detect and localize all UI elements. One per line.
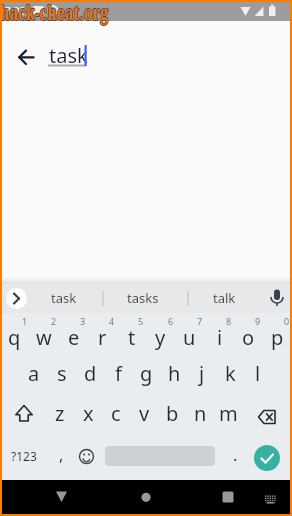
staticText: n — [194, 400, 207, 427]
staticText: z — [55, 400, 65, 427]
button[interactable]: . — [222, 435, 248, 475]
staticText: hack-cheat.org — [1, 0, 109, 26]
staticText: 1 — [22, 315, 28, 327]
staticText: 5 — [138, 315, 144, 327]
staticText: m — [219, 400, 238, 427]
button[interactable] — [6, 288, 27, 309]
button[interactable]: m — [214, 393, 242, 433]
button[interactable]: t — [117, 317, 146, 358]
staticText: u — [183, 324, 196, 351]
button[interactable]: j — [188, 353, 216, 393]
staticText: 4 — [109, 315, 115, 327]
button[interactable]: i — [205, 317, 234, 358]
button[interactable]: g — [132, 353, 160, 393]
button[interactable] — [251, 401, 283, 433]
staticText: task — [49, 42, 88, 69]
staticText: a — [28, 360, 40, 387]
staticText: q — [8, 324, 21, 351]
staticText: 6 — [168, 315, 174, 327]
staticText: hack-cheat.org — [0, 0, 108, 26]
button[interactable]: h — [160, 353, 188, 393]
staticText: p — [271, 324, 284, 351]
staticText: v — [139, 400, 150, 427]
staticText: hack-cheat.org — [0, 0, 109, 26]
button[interactable]: k — [216, 353, 244, 393]
button[interactable] — [10, 43, 38, 71]
staticText: hack-cheat.org — [0, 1, 109, 27]
button[interactable] — [125, 480, 165, 514]
staticText: e — [68, 324, 80, 351]
staticText: 0 — [284, 315, 290, 327]
staticText: task — [51, 289, 77, 307]
staticText: f — [115, 360, 122, 387]
button[interactable]: ?123 — [2, 436, 46, 476]
staticText: hack-cheat.org — [0, 0, 109, 25]
button[interactable]: x — [74, 393, 102, 433]
button[interactable] — [208, 480, 248, 514]
button[interactable] — [42, 480, 82, 514]
button[interactable]: l — [244, 353, 272, 393]
button[interactable]: q — [0, 317, 29, 358]
staticText: s — [57, 360, 67, 387]
staticText: h — [168, 360, 181, 387]
staticText: l — [255, 360, 261, 387]
staticText: j — [199, 360, 205, 387]
staticText: x — [83, 400, 94, 427]
staticText: k — [225, 360, 236, 387]
button[interactable]: w — [29, 317, 58, 358]
button[interactable]: a — [20, 353, 48, 393]
button[interactable]: talk — [193, 283, 255, 312]
staticText: . — [233, 444, 238, 466]
staticText: t — [128, 324, 136, 351]
staticText: 8 — [226, 315, 232, 327]
button[interactable]: tasks — [108, 283, 178, 312]
button[interactable] — [254, 445, 280, 471]
button[interactable]: y — [146, 317, 175, 358]
staticText: y — [155, 324, 166, 351]
button[interactable]: f — [104, 353, 132, 393]
button[interactable]: n — [186, 393, 214, 433]
staticText: w — [36, 324, 52, 351]
staticText: 2 — [51, 315, 57, 327]
staticText: o — [242, 324, 255, 351]
staticText: talk — [213, 289, 236, 307]
button[interactable]: c — [102, 393, 130, 433]
staticText: g — [140, 360, 153, 387]
staticText: i — [217, 324, 223, 351]
staticText: ?123 — [11, 448, 37, 464]
staticText: c — [111, 400, 121, 427]
button[interactable]: v — [130, 393, 158, 433]
button[interactable]: d — [76, 353, 104, 393]
button[interactable]: r — [88, 317, 117, 358]
staticText: d — [84, 360, 97, 387]
button[interactable]: task — [29, 283, 99, 312]
button[interactable]: , — [48, 435, 74, 475]
button[interactable] — [8, 398, 40, 430]
staticText: b — [166, 400, 179, 427]
button[interactable]: z — [46, 393, 74, 433]
staticText: 9 — [255, 315, 261, 327]
staticText: 3 — [80, 315, 86, 327]
button[interactable] — [263, 284, 291, 313]
staticText: , — [59, 444, 64, 466]
button[interactable]: e — [59, 317, 88, 358]
button[interactable]: u — [175, 317, 204, 358]
button[interactable]: b — [158, 393, 186, 433]
staticText: 7 — [197, 315, 203, 327]
staticText: tasks — [127, 289, 159, 307]
button[interactable]: p — [263, 317, 292, 358]
staticText: r — [98, 324, 107, 351]
button[interactable]: o — [234, 317, 263, 358]
button[interactable] — [255, 480, 285, 514]
button[interactable] — [72, 442, 101, 471]
button[interactable]: s — [48, 353, 76, 393]
staticText: 7:06 — [5, 4, 25, 18]
